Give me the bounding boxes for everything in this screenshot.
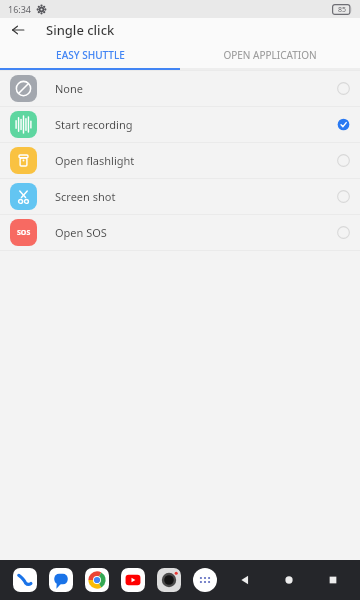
button[interactable]: None bbox=[0, 70, 360, 106]
button[interactable]: Recents bbox=[322, 569, 344, 591]
staticText: 85 bbox=[338, 5, 347, 15]
button[interactable]: Back bbox=[234, 569, 256, 591]
button[interactable]: Open flashlight bbox=[0, 142, 360, 178]
staticText: Single click bbox=[46, 21, 115, 39]
button[interactable]: EASY SHUTTLE bbox=[0, 42, 180, 68]
staticText: Open flashlight bbox=[55, 153, 135, 168]
button[interactable]: Screen shot bbox=[0, 178, 360, 214]
button[interactable]: Camera bbox=[156, 567, 182, 593]
button[interactable]: Messages bbox=[48, 567, 74, 593]
button[interactable]: SOS bbox=[0, 214, 360, 250]
button[interactable]: All apps bbox=[192, 567, 218, 593]
button[interactable]: Start recording bbox=[0, 106, 360, 142]
button[interactable]: Home bbox=[278, 569, 300, 591]
button[interactable]: Back bbox=[6, 18, 30, 42]
button[interactable]: OPEN APPLICATION bbox=[180, 42, 360, 68]
staticText: Open SOS bbox=[55, 225, 107, 240]
staticText: 16:34 bbox=[8, 3, 32, 15]
staticText: OPEN APPLICATION bbox=[223, 48, 317, 62]
button[interactable]: Chrome bbox=[84, 567, 110, 593]
staticText: Start recording bbox=[55, 117, 133, 132]
button[interactable]: Phone bbox=[12, 567, 38, 593]
staticText: SOS bbox=[17, 228, 31, 238]
staticText: None bbox=[55, 81, 84, 96]
staticText: EASY SHUTTLE bbox=[56, 48, 125, 62]
staticText: Screen shot bbox=[55, 189, 116, 204]
button[interactable]: YouTube bbox=[120, 567, 146, 593]
